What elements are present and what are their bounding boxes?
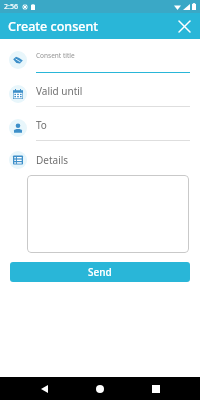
staticText: Send [88, 265, 112, 279]
staticText: Details [36, 153, 69, 167]
staticText: Create consent [8, 18, 99, 35]
button[interactable]: Valid until [0, 77, 200, 111]
button[interactable]: Send [10, 262, 190, 282]
button[interactable]: To [0, 111, 200, 145]
button[interactable] [27, 175, 189, 253]
button[interactable]: Back [32, 377, 56, 400]
button[interactable]: Recent apps [144, 377, 168, 400]
staticText: To [36, 118, 47, 132]
staticText: Valid until [36, 84, 83, 98]
button[interactable]: Consent title [0, 43, 200, 77]
button[interactable]: Home [88, 377, 112, 400]
staticText: Consent title [36, 51, 75, 60]
button[interactable]: Details [0, 145, 200, 175]
staticText: 2:56 [4, 2, 18, 12]
button[interactable]: Close [175, 17, 193, 35]
